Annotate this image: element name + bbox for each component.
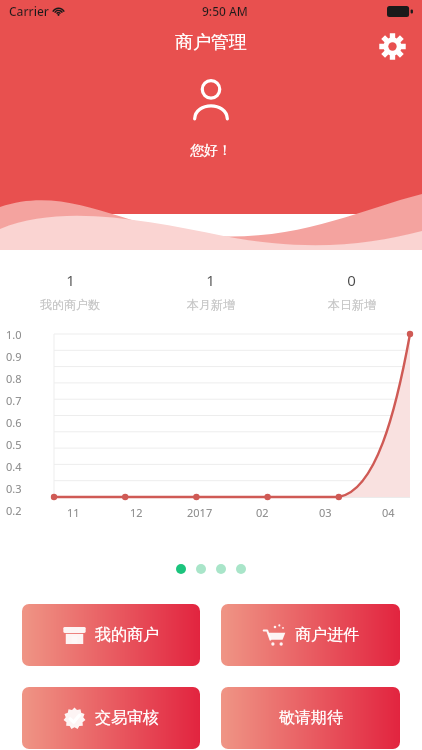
button[interactable]: 我的商户 <box>22 604 200 666</box>
staticText: 9:50 AM <box>202 3 248 19</box>
staticText: 12 <box>130 505 143 520</box>
button[interactable]: 1 <box>0 270 140 312</box>
staticText: 敬请期待 <box>279 708 343 728</box>
staticText: 我的商户 <box>95 625 159 645</box>
staticText: 0.3 <box>6 481 22 496</box>
staticText: 0.9 <box>6 349 22 364</box>
staticText: 0.6 <box>6 415 22 430</box>
staticText: 0.2 <box>6 503 22 518</box>
staticText: 0.8 <box>6 371 22 386</box>
staticText: 1.0 <box>6 327 22 342</box>
button[interactable]: Settings <box>373 27 411 65</box>
button[interactable]: 1 <box>140 270 281 312</box>
button[interactable]: 交易审核 <box>22 687 200 749</box>
staticText: 1 <box>66 270 75 290</box>
staticText: 您好！ <box>190 142 232 160</box>
button[interactable]: 敬请期待 <box>221 687 400 749</box>
staticText: 本月新增 <box>187 297 235 312</box>
staticText: 02 <box>256 505 269 520</box>
staticText: 1 <box>206 270 215 290</box>
button[interactable]: 商户进件 <box>221 604 400 666</box>
staticText: 我的商户数 <box>40 297 100 312</box>
staticText: 04 <box>382 505 395 520</box>
staticText: 0.5 <box>6 437 22 452</box>
staticText: 本日新增 <box>328 297 376 312</box>
staticText: 2017 <box>187 505 213 520</box>
staticText: 03 <box>319 505 332 520</box>
staticText: 交易审核 <box>95 708 159 728</box>
staticText: 商户进件 <box>295 625 359 645</box>
button[interactable]: 0 <box>281 270 422 312</box>
staticText: 商户管理 <box>175 31 247 54</box>
staticText: 0.4 <box>6 459 22 474</box>
staticText: 11 <box>67 505 80 520</box>
staticText: 0.7 <box>6 393 22 408</box>
staticText: 0 <box>347 270 356 290</box>
staticText: Carrier <box>9 3 49 19</box>
